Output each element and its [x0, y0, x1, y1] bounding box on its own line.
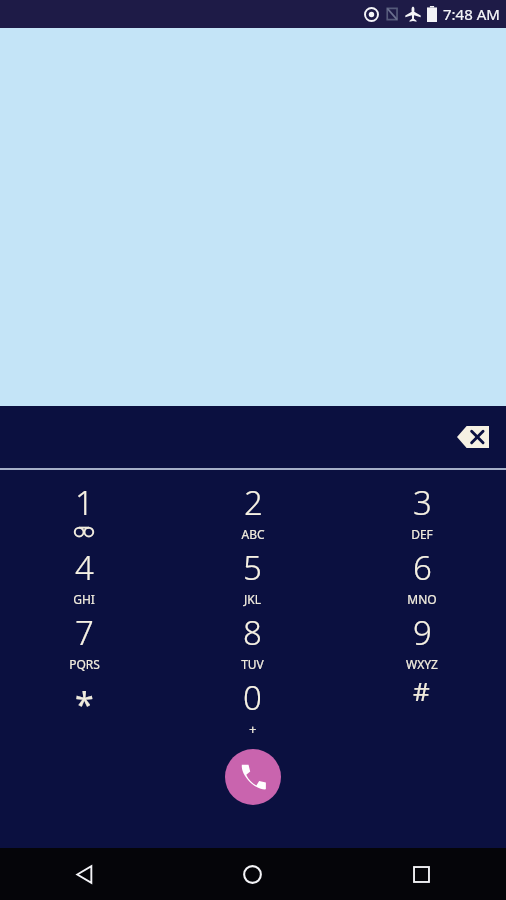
- staticText: GHI: [73, 591, 95, 607]
- button[interactable]: 5: [168, 545, 337, 607]
- staticText: 7: [75, 610, 94, 655]
- button[interactable]: 3: [337, 480, 506, 542]
- button[interactable]: *: [0, 675, 168, 721]
- button[interactable]: 4: [0, 545, 168, 607]
- button[interactable]: 0: [168, 675, 337, 738]
- staticText: 5: [243, 545, 262, 590]
- staticText: 1: [75, 480, 94, 525]
- staticText: #: [413, 673, 430, 708]
- staticText: 2: [244, 480, 263, 525]
- staticText: ABC: [241, 526, 265, 542]
- staticText: JKL: [244, 591, 261, 607]
- staticText: 6: [413, 545, 432, 590]
- staticText: 9: [413, 610, 432, 655]
- staticText: TUV: [241, 656, 264, 672]
- staticText: *: [75, 681, 94, 727]
- staticText: DEF: [411, 526, 433, 542]
- staticText: PQRS: [69, 656, 100, 672]
- staticText: WXYZ: [406, 656, 438, 672]
- staticText: 7:48 AM: [443, 4, 500, 24]
- button[interactable]: #: [337, 675, 506, 710]
- staticText: 8: [243, 610, 262, 655]
- button[interactable]: Recent apps: [337, 848, 506, 900]
- button[interactable]: 6: [337, 545, 506, 607]
- button[interactable]: 2: [168, 480, 337, 542]
- button[interactable]: 1: [0, 480, 168, 537]
- staticText: MNO: [407, 591, 437, 607]
- staticText: 3: [413, 480, 432, 525]
- button[interactable]: Call: [225, 749, 281, 805]
- button[interactable]: Home: [168, 848, 337, 900]
- staticText: +: [249, 720, 257, 738]
- staticText: 0: [243, 675, 262, 720]
- button[interactable]: 7: [0, 610, 168, 672]
- button[interactable]: Backspace: [447, 415, 499, 459]
- staticText: 4: [75, 545, 94, 590]
- button[interactable]: Back: [0, 848, 168, 900]
- button[interactable]: 9: [337, 610, 506, 672]
- button[interactable]: 8: [168, 610, 337, 672]
